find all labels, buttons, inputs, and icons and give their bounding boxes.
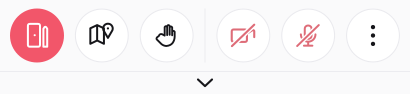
button[interactable]: Turn camera on (216, 8, 270, 62)
button[interactable]: More options (346, 8, 400, 62)
button[interactable]: Unmute (281, 8, 335, 62)
button[interactable]: Raise hand (140, 8, 194, 62)
button[interactable]: Map (75, 8, 129, 62)
button[interactable]: Collapse controls (0, 72, 410, 94)
button[interactable]: Leave call (10, 8, 64, 62)
